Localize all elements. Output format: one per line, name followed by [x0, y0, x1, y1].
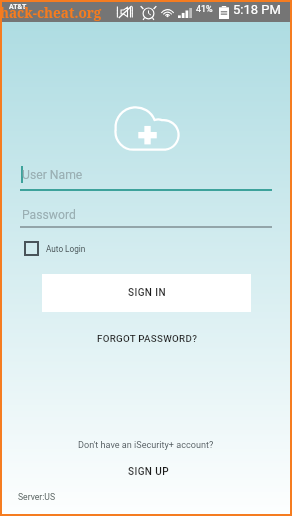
- button[interactable]: Password: [2, 203, 290, 229]
- button[interactable]: Auto Login: [24, 241, 86, 256]
- staticText: SIGN UP: [128, 466, 169, 478]
- staticText: FORGOT PASSWORD?: [97, 333, 198, 344]
- staticText: User Name: [22, 168, 83, 182]
- staticText: 5:18 PM: [233, 2, 281, 17]
- staticText: AT&T: [9, 3, 27, 11]
- staticText: Server:US: [18, 492, 55, 502]
- staticText: Don't have an iSecurity+ account?: [78, 440, 214, 451]
- staticText: Auto Login: [46, 244, 86, 254]
- staticText: SIGN IN: [128, 287, 166, 299]
- button[interactable]: User Name: [2, 165, 290, 191]
- button[interactable]: SIGN UP: [128, 466, 169, 478]
- button[interactable]: FORGOT PASSWORD?: [97, 333, 198, 344]
- staticText: hack-cheat.org: [0, 4, 102, 22]
- staticText: Password: [22, 208, 76, 222]
- staticText: 41%: [196, 4, 213, 15]
- button[interactable]: SIGN IN: [42, 274, 251, 312]
